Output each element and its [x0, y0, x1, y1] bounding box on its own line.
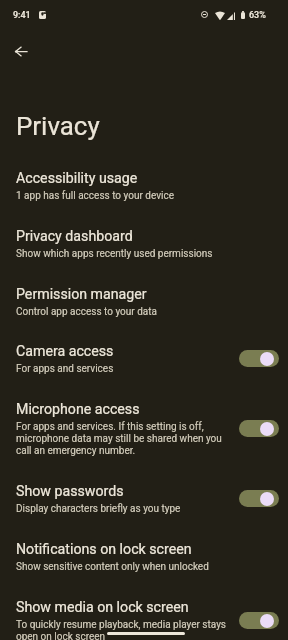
- button[interactable]: Camera access: [239, 350, 279, 367]
- staticText: Show which apps recently used permission…: [16, 248, 213, 260]
- button[interactable]: Permission manager: [0, 279, 288, 336]
- staticText: Show sensitive content only when unlocke…: [16, 561, 209, 573]
- staticText: 9:41: [13, 10, 31, 21]
- button[interactable]: Show media on lock screen: [239, 612, 279, 629]
- staticText: Privacy: [16, 111, 100, 141]
- staticText: Camera access: [16, 343, 114, 360]
- staticText: Notifications on lock screen: [16, 541, 192, 558]
- staticText: Permission manager: [16, 286, 147, 303]
- staticText: To quickly resume playback, media player…: [16, 619, 232, 640]
- button[interactable]: Camera access: [0, 336, 288, 394]
- staticText: Privacy dashboard: [16, 228, 133, 245]
- button[interactable]: Notifications on lock screen: [0, 534, 288, 591]
- staticText: For apps and services: [16, 363, 114, 375]
- staticText: Show passwords: [16, 483, 124, 500]
- staticText: Show media on lock screen: [16, 599, 189, 616]
- button[interactable]: Show passwords: [239, 490, 279, 507]
- button[interactable]: Microphone access: [239, 420, 279, 437]
- button[interactable]: Microphone access: [0, 394, 288, 476]
- staticText: For apps and services. If this setting i…: [16, 421, 232, 457]
- staticText: Display characters briefly as you type: [16, 503, 181, 515]
- staticText: Microphone access: [16, 401, 140, 418]
- button[interactable]: Show passwords: [0, 476, 288, 534]
- button[interactable]: Accessibility usage: [0, 163, 288, 221]
- staticText: 63%: [249, 10, 266, 21]
- staticText: Accessibility usage: [16, 170, 138, 187]
- button[interactable]: Privacy dashboard: [0, 221, 288, 279]
- button[interactable]: Show media on lock screen: [0, 592, 288, 640]
- staticText: Control app access to your data: [16, 306, 157, 318]
- staticText: 1 app has full access to your device: [16, 190, 174, 202]
- button[interactable]: Back: [6, 37, 35, 66]
